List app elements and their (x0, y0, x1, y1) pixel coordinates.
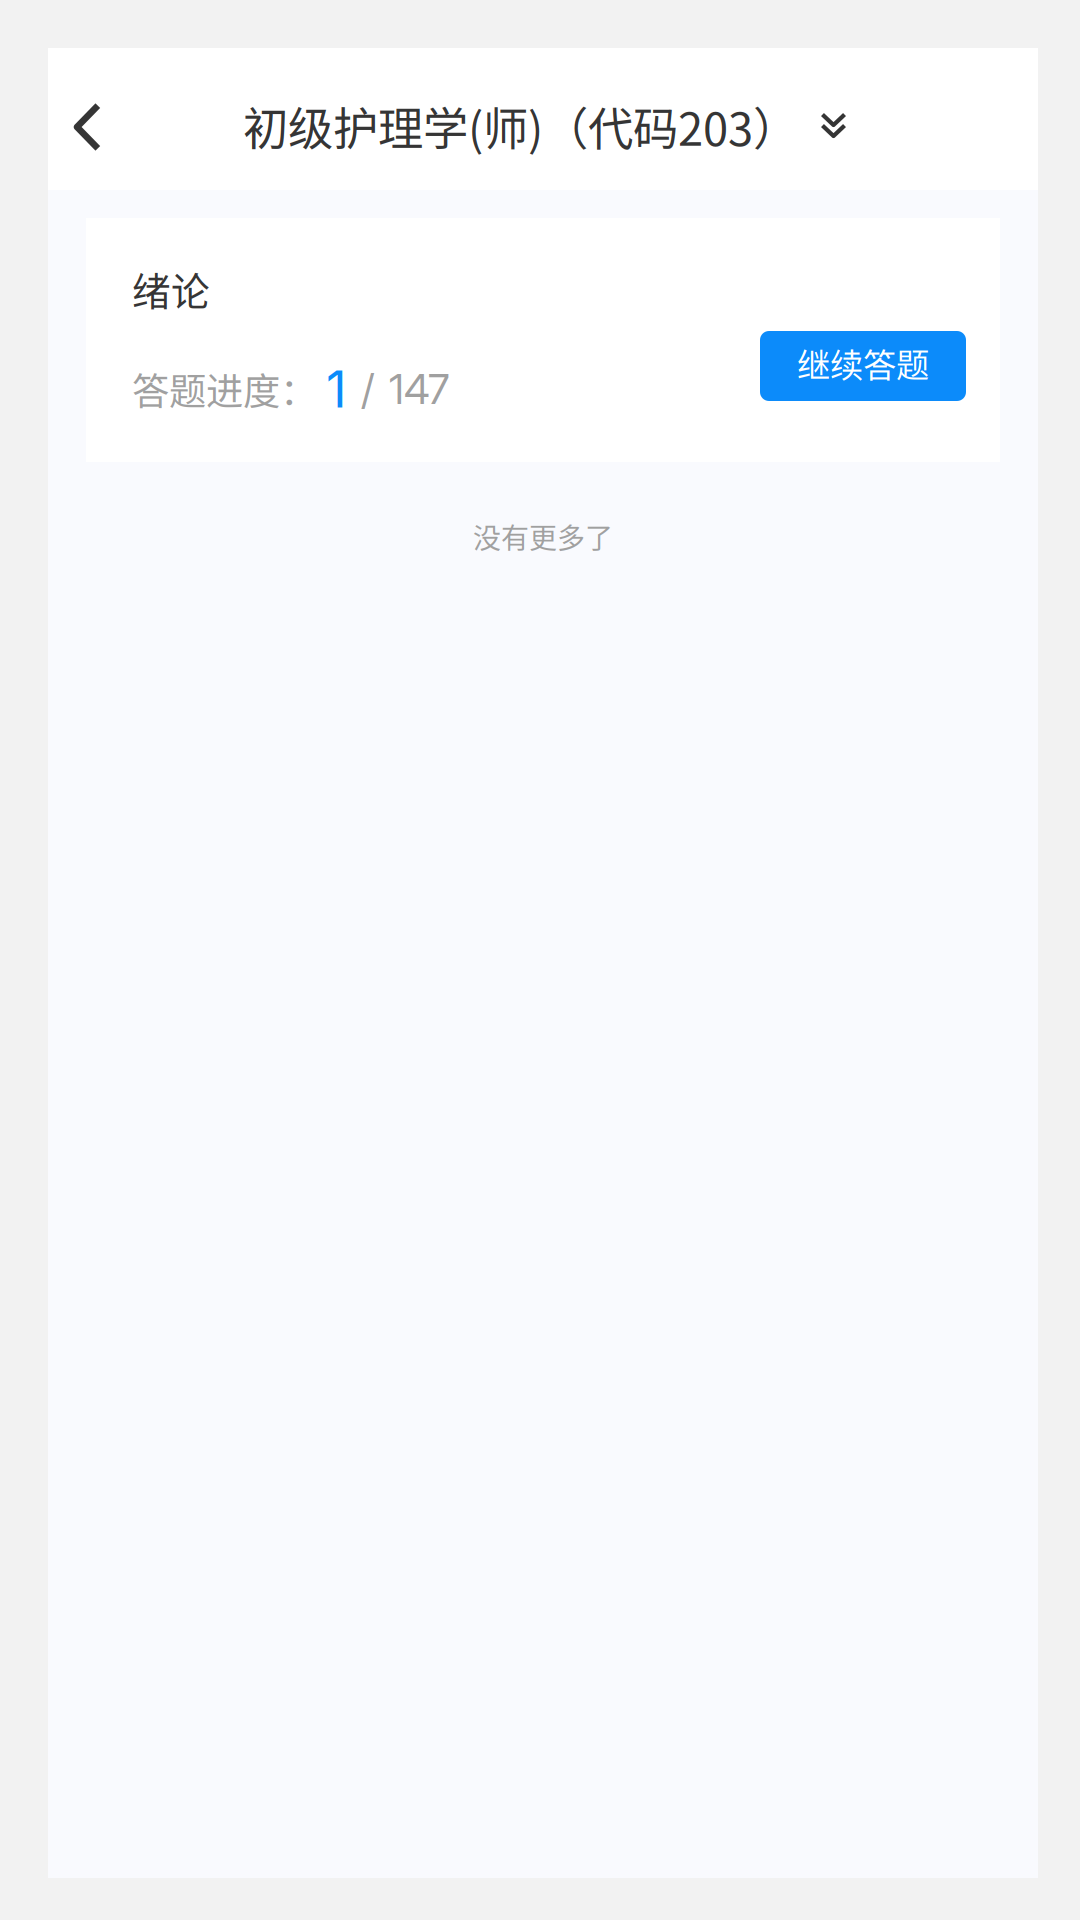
staticText: 绪论 (132, 261, 210, 317)
staticText: 147 (389, 364, 449, 414)
button[interactable]: 返回 (48, 64, 124, 190)
button[interactable]: 展开章节列表 (805, 62, 862, 190)
staticText: 答题进度： (132, 362, 317, 416)
button[interactable]: 继续答题 (760, 331, 966, 401)
staticText: 初级护理学(师)（代码203） (243, 93, 798, 159)
staticText: 继续答题 (797, 339, 929, 387)
staticText: / (361, 364, 375, 414)
staticText: 没有更多了 (473, 516, 613, 557)
staticText: 1 (326, 358, 347, 420)
